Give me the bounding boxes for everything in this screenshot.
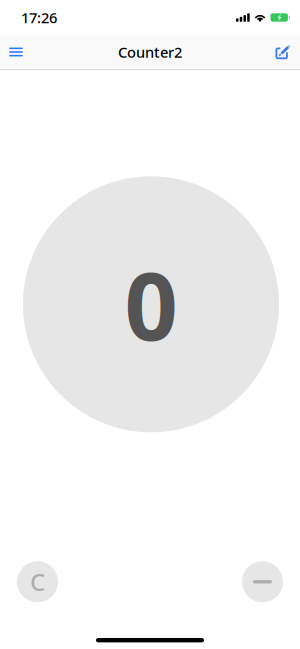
staticText: C bbox=[30, 566, 45, 598]
button[interactable]: 0 bbox=[23, 176, 279, 432]
staticText: Counter2 bbox=[118, 42, 182, 62]
staticText: 17:26 bbox=[21, 8, 57, 27]
staticText: 0 bbox=[124, 242, 177, 366]
button[interactable]: Menu bbox=[1, 35, 31, 69]
button[interactable]: Compose bbox=[268, 35, 298, 69]
button[interactable]: Clear bbox=[17, 561, 58, 602]
button[interactable]: Decrement bbox=[242, 561, 283, 602]
